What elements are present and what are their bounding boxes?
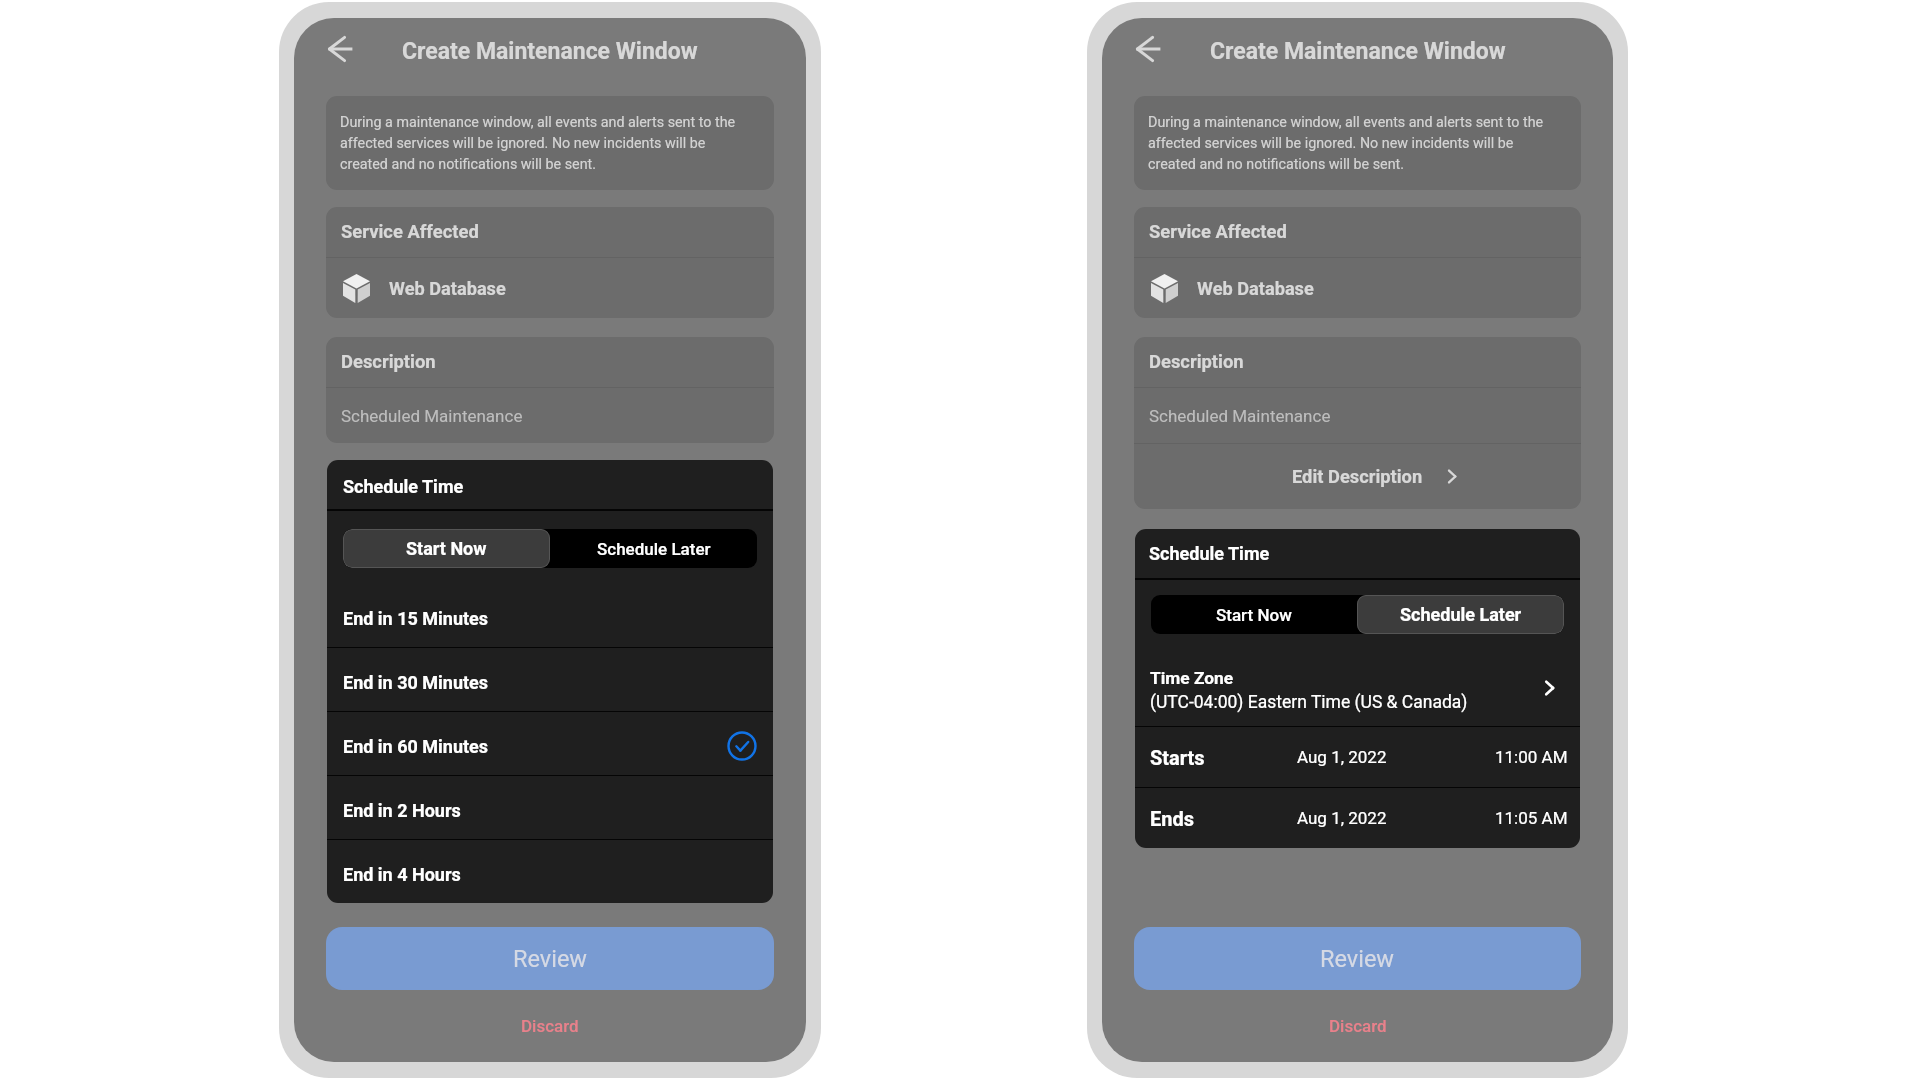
- staticText: Schedule Time: [343, 476, 464, 497]
- button[interactable]: Time Zone: [1135, 650, 1580, 726]
- button[interactable]: Web Database: [326, 258, 774, 318]
- button[interactable]: End in 15 Minutes: [327, 584, 773, 647]
- button[interactable]: Discard: [294, 990, 806, 1062]
- staticText: During a maintenance window, all events …: [340, 114, 744, 173]
- button[interactable]: End in 30 Minutes: [327, 648, 773, 711]
- staticText: Web Database: [389, 278, 506, 299]
- staticText: Create Maintenance Window: [402, 38, 698, 65]
- staticText: 11:00 AM: [1495, 747, 1568, 767]
- button[interactable]: Back: [1126, 27, 1170, 71]
- button[interactable]: Scheduled Maintenance: [1134, 388, 1581, 443]
- staticText: (UTC-04:00) Eastern Time (US & Canada): [1150, 692, 1468, 713]
- staticText: Discard: [1329, 1016, 1387, 1036]
- staticText: Schedule Later: [1400, 604, 1522, 625]
- staticText: During a maintenance window, all events …: [1148, 114, 1551, 173]
- staticText: End in 2 Hours: [343, 800, 461, 821]
- staticText: Aug 1, 2022: [1297, 808, 1387, 828]
- staticText: Scheduled Maintenance: [341, 406, 523, 426]
- button[interactable]: Review: [326, 927, 774, 990]
- staticText: Aug 1, 2022: [1297, 747, 1387, 767]
- staticText: 11:05 AM: [1495, 808, 1568, 828]
- button[interactable]: Description: [326, 337, 774, 387]
- button[interactable]: Ends: [1135, 788, 1580, 848]
- staticText: Schedule Later: [597, 539, 711, 559]
- staticText: End in 15 Minutes: [343, 608, 489, 629]
- button[interactable]: Service Affected: [1134, 207, 1581, 257]
- staticText: Create Maintenance Window: [1210, 38, 1506, 65]
- staticText: Time Zone: [1150, 668, 1234, 688]
- staticText: End in 4 Hours: [343, 864, 461, 885]
- staticText: Service Affected: [341, 221, 479, 243]
- staticText: Web Database: [1197, 278, 1314, 299]
- button[interactable]: Start Now: [343, 529, 550, 568]
- staticText: Start Now: [406, 538, 487, 559]
- staticText: Discard: [521, 1016, 579, 1036]
- other: Selected: [727, 731, 757, 761]
- button[interactable]: End in 4 Hours: [327, 840, 773, 903]
- button[interactable]: Schedule Later: [550, 529, 757, 568]
- staticText: Edit Description: [1292, 466, 1423, 487]
- staticText: Scheduled Maintenance: [1149, 406, 1331, 426]
- button[interactable]: Scheduled Maintenance: [326, 388, 774, 443]
- staticText: End in 60 Minutes: [343, 736, 489, 757]
- staticText: Review: [513, 945, 588, 973]
- staticText: Ends: [1150, 807, 1194, 830]
- button[interactable]: End in 60 Minutes: [327, 712, 773, 775]
- button[interactable]: Edit Description: [1134, 444, 1581, 509]
- staticText: Description: [1149, 351, 1244, 373]
- button[interactable]: Service Affected: [326, 207, 774, 257]
- button[interactable]: Start Now: [1151, 595, 1357, 634]
- staticText: Description: [341, 351, 436, 373]
- button[interactable]: Description: [1134, 337, 1581, 387]
- button[interactable]: Back: [318, 27, 362, 71]
- staticText: Service Affected: [1149, 221, 1287, 243]
- button[interactable]: Web Database: [1134, 258, 1581, 318]
- staticText: Review: [1320, 945, 1395, 973]
- button[interactable]: Schedule Later: [1357, 595, 1564, 634]
- staticText: Starts: [1150, 746, 1205, 769]
- button[interactable]: Starts: [1135, 727, 1580, 787]
- button[interactable]: End in 2 Hours: [327, 776, 773, 839]
- button[interactable]: Discard: [1102, 990, 1613, 1062]
- staticText: End in 30 Minutes: [343, 672, 489, 693]
- staticText: Schedule Time: [1149, 543, 1270, 564]
- button[interactable]: Review: [1134, 927, 1581, 990]
- staticText: Start Now: [1216, 605, 1292, 625]
